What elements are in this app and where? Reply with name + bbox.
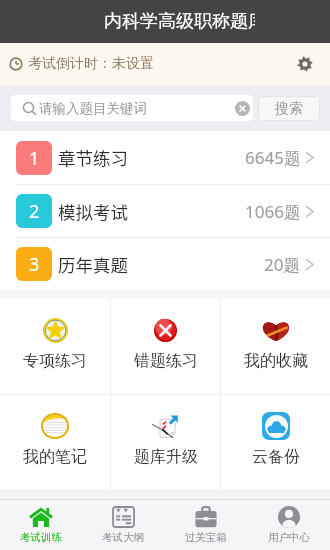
staticText: 用户中心	[268, 531, 310, 544]
staticText: 错题练习	[134, 351, 198, 371]
staticText: 1	[29, 146, 40, 171]
button[interactable]: 1	[0, 131, 330, 184]
staticText: 2	[29, 199, 40, 224]
button[interactable]: Settings	[286, 45, 324, 83]
staticText: 过关宝箱	[185, 531, 227, 544]
button[interactable]: 题库升级	[111, 395, 220, 489]
staticText: 1066题	[245, 200, 301, 223]
button[interactable]: 2	[0, 185, 330, 237]
staticText: 请输入题目关键词	[39, 100, 147, 117]
staticText: 专项练习	[23, 351, 87, 371]
button[interactable]: 云备份	[221, 395, 330, 489]
button[interactable]: 考试大纲	[82, 500, 164, 550]
staticText: 历年真题	[58, 252, 128, 277]
button[interactable]: 专项练习	[0, 299, 110, 394]
staticText: 考试训练	[20, 531, 62, 544]
button[interactable]: 搜索	[258, 96, 320, 121]
staticText: 考试大纲	[102, 531, 144, 544]
button[interactable]: 考试训练	[0, 500, 82, 550]
staticText: 我的笔记	[23, 447, 87, 467]
staticText: 题库升级	[134, 447, 198, 467]
button[interactable]: 用户中心	[247, 500, 330, 550]
staticText: 我的收藏	[244, 351, 308, 371]
staticText: 内科学高级职称题库	[104, 10, 255, 33]
button[interactable]: 过关宝箱	[164, 500, 247, 550]
button[interactable]: 3	[0, 238, 330, 290]
staticText: 6645题	[245, 146, 301, 169]
staticText: 章节练习	[58, 145, 128, 170]
button[interactable]: 错题练习	[111, 299, 220, 394]
staticText: 考试倒计时：未设置	[28, 55, 154, 73]
staticText: 模拟考试	[58, 199, 128, 224]
button[interactable]: Clear	[232, 98, 253, 119]
staticText: 搜索	[275, 100, 303, 118]
staticText: 20题	[264, 253, 301, 276]
staticText: 云备份	[252, 447, 300, 467]
button[interactable]: 我的笔记	[0, 395, 110, 489]
button[interactable]: 请输入题目关键词	[11, 95, 253, 121]
button[interactable]: 我的收藏	[221, 299, 330, 394]
staticText: 3	[29, 252, 40, 277]
